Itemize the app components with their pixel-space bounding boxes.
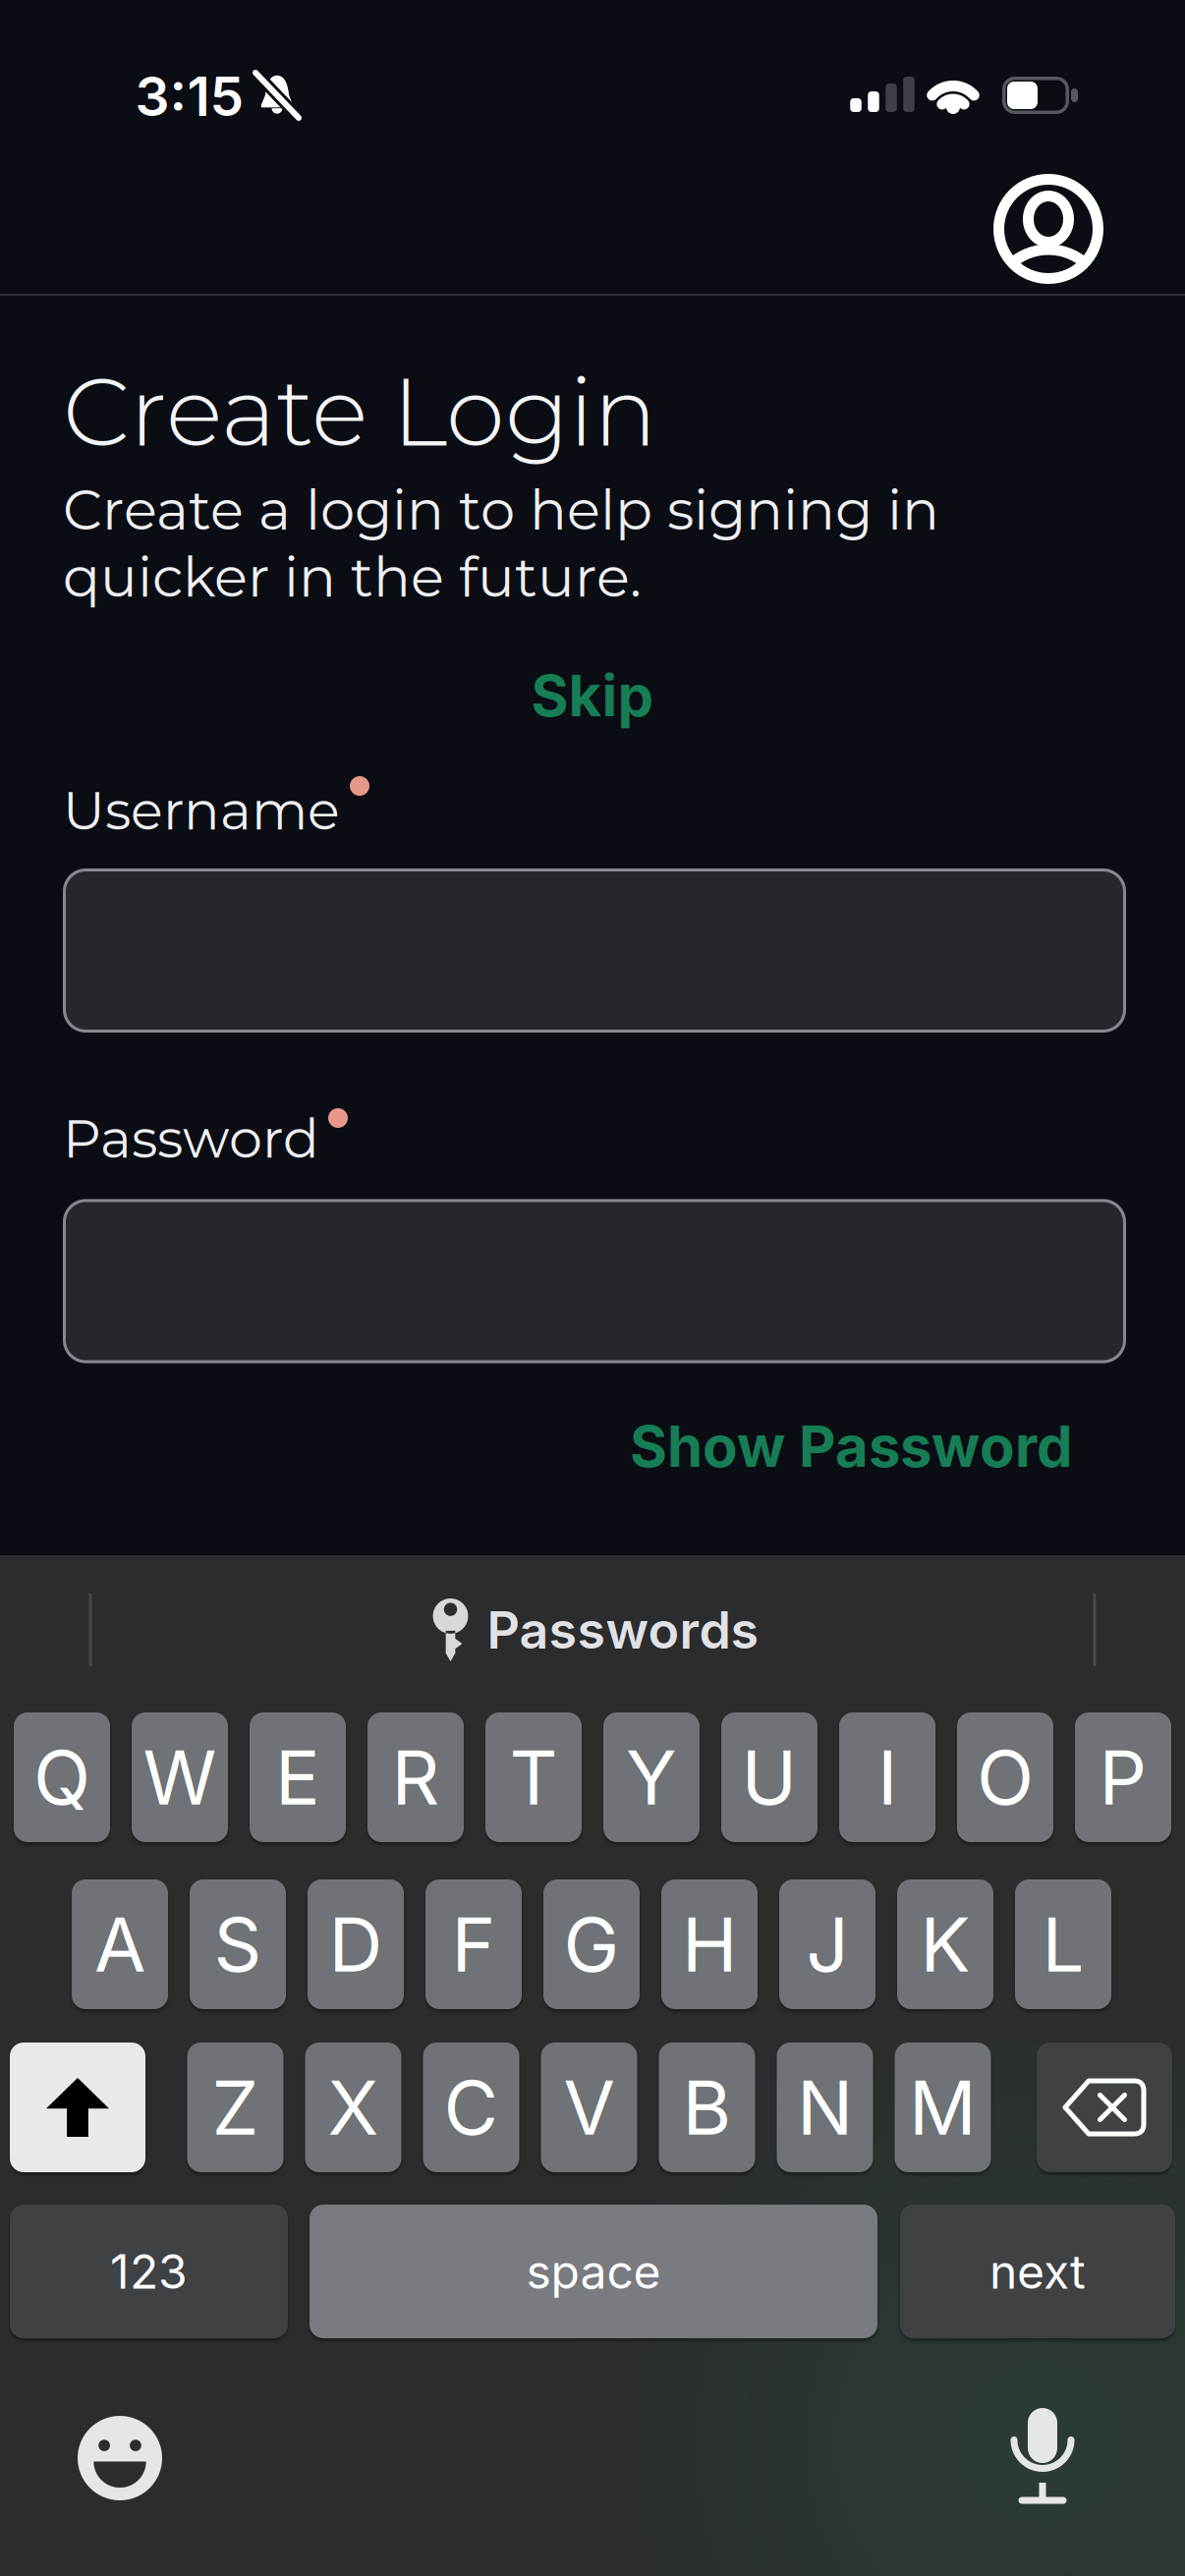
button[interactable]: B (659, 2043, 755, 2172)
button[interactable]: C (423, 2043, 519, 2172)
staticText: R (392, 1732, 440, 1822)
staticText: L (1042, 1899, 1084, 1989)
button[interactable]: R (367, 1712, 464, 1842)
staticText: I (877, 1732, 897, 1822)
button[interactable] (63, 1199, 1126, 1363)
button[interactable]: M (895, 2043, 991, 2172)
staticText: Create a login to help signing in quicke… (63, 476, 939, 610)
staticText: J (806, 1899, 848, 1989)
staticText: X (328, 2062, 379, 2153)
staticText: C (444, 2062, 499, 2153)
staticText: G (564, 1899, 620, 1989)
staticText: S (214, 1899, 262, 1989)
button[interactable] (78, 2416, 162, 2500)
button[interactable] (1013, 2408, 1072, 2504)
staticText: Skip (531, 661, 654, 730)
staticText: Y (626, 1732, 677, 1822)
staticText: Password (63, 1106, 319, 1171)
button[interactable]: S (190, 1879, 286, 2009)
button[interactable]: N (777, 2043, 873, 2172)
staticText: N (797, 2062, 853, 2153)
staticText: T (509, 1732, 558, 1822)
button[interactable]: F (425, 1879, 522, 2009)
staticText: W (143, 1732, 217, 1822)
staticText: Q (33, 1732, 90, 1822)
staticText: M (909, 2062, 977, 2153)
staticText: next (989, 2243, 1086, 2300)
staticText: O (977, 1732, 1034, 1822)
button[interactable]: J (779, 1879, 875, 2009)
button[interactable]: W (132, 1712, 228, 1842)
button[interactable]: E (250, 1712, 346, 1842)
button[interactable]: X (305, 2043, 401, 2172)
staticText: 123 (110, 2243, 188, 2300)
button[interactable]: D (308, 1879, 404, 2009)
staticText: K (920, 1899, 970, 1989)
button[interactable]: L (1015, 1879, 1111, 2009)
staticText: Passwords (487, 1599, 759, 1661)
button[interactable]: 123 (10, 2205, 288, 2338)
staticText: E (275, 1732, 320, 1822)
button[interactable]: Skip (511, 653, 674, 738)
staticText: Show Password (630, 1412, 1073, 1481)
staticText: Create Login (63, 354, 657, 469)
button[interactable]: space (310, 2205, 877, 2338)
button[interactable]: V (541, 2043, 637, 2172)
button[interactable]: P (1075, 1712, 1171, 1842)
button[interactable] (10, 2043, 145, 2172)
staticText: space (526, 2243, 661, 2300)
staticText: B (682, 2062, 732, 2153)
button[interactable]: H (661, 1879, 758, 2009)
staticText: V (564, 2062, 615, 2153)
button[interactable]: O (957, 1712, 1053, 1842)
button[interactable]: Q (14, 1712, 110, 1842)
staticText: Z (212, 2062, 259, 2153)
staticText: D (329, 1899, 383, 1989)
staticText: H (682, 1899, 737, 1989)
button[interactable] (993, 174, 1103, 284)
button[interactable] (63, 868, 1126, 1033)
button[interactable]: Show Password (630, 1412, 1073, 1481)
staticText: U (741, 1732, 797, 1822)
staticText: A (94, 1899, 145, 1989)
button[interactable]: I (839, 1712, 935, 1842)
button[interactable] (1037, 2043, 1172, 2172)
button[interactable]: K (897, 1879, 993, 2009)
staticText: Username (63, 778, 340, 843)
button[interactable]: Passwords (430, 1598, 759, 1661)
button[interactable]: Z (187, 2043, 283, 2172)
button[interactable]: Y (603, 1712, 700, 1842)
button[interactable]: T (485, 1712, 582, 1842)
button[interactable]: next (900, 2205, 1175, 2338)
staticText: F (451, 1899, 496, 1989)
button[interactable]: A (72, 1879, 168, 2009)
staticText: 3:15 (135, 64, 244, 129)
staticText: P (1099, 1732, 1147, 1822)
button[interactable]: G (543, 1879, 640, 2009)
button[interactable]: U (721, 1712, 818, 1842)
